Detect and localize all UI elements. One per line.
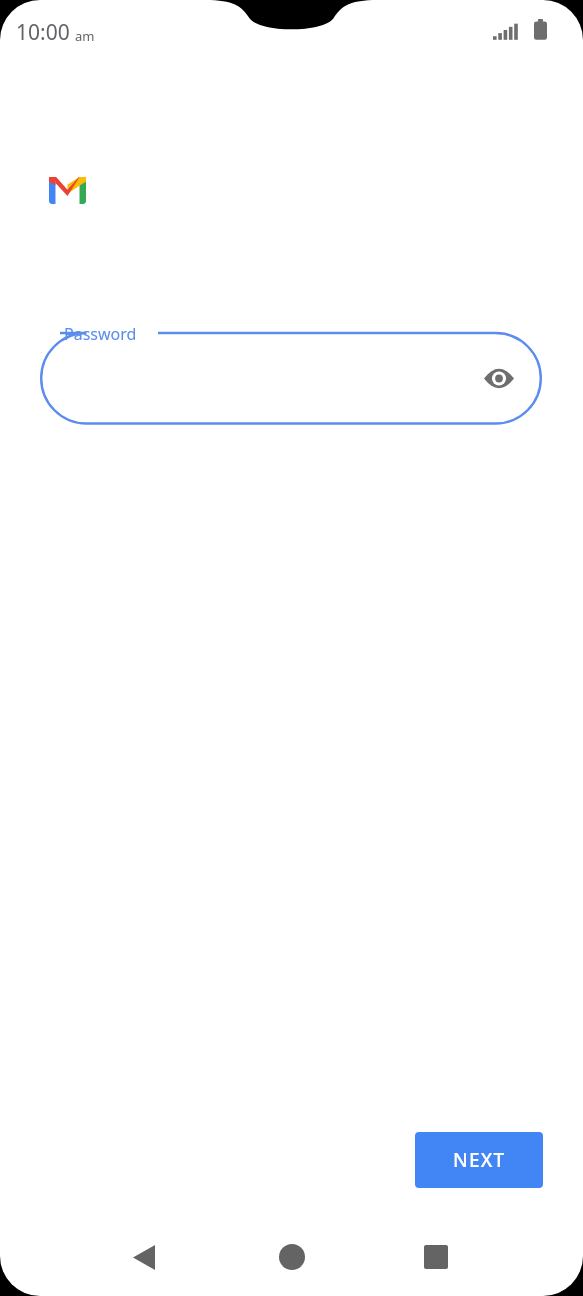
- staticText: 10:00: [16, 18, 70, 47]
- button[interactable]: Recent apps: [404, 1225, 468, 1289]
- button[interactable]: Back: [112, 1225, 176, 1289]
- staticText: am: [75, 27, 95, 45]
- button[interactable]: NEXT: [415, 1132, 543, 1188]
- button[interactable]: Home: [260, 1225, 324, 1289]
- button[interactable]: Show password: [477, 356, 521, 400]
- staticText: Password: [64, 323, 137, 345]
- staticText: NEXT: [453, 1147, 506, 1173]
- button[interactable]: Password: [40, 322, 542, 424]
